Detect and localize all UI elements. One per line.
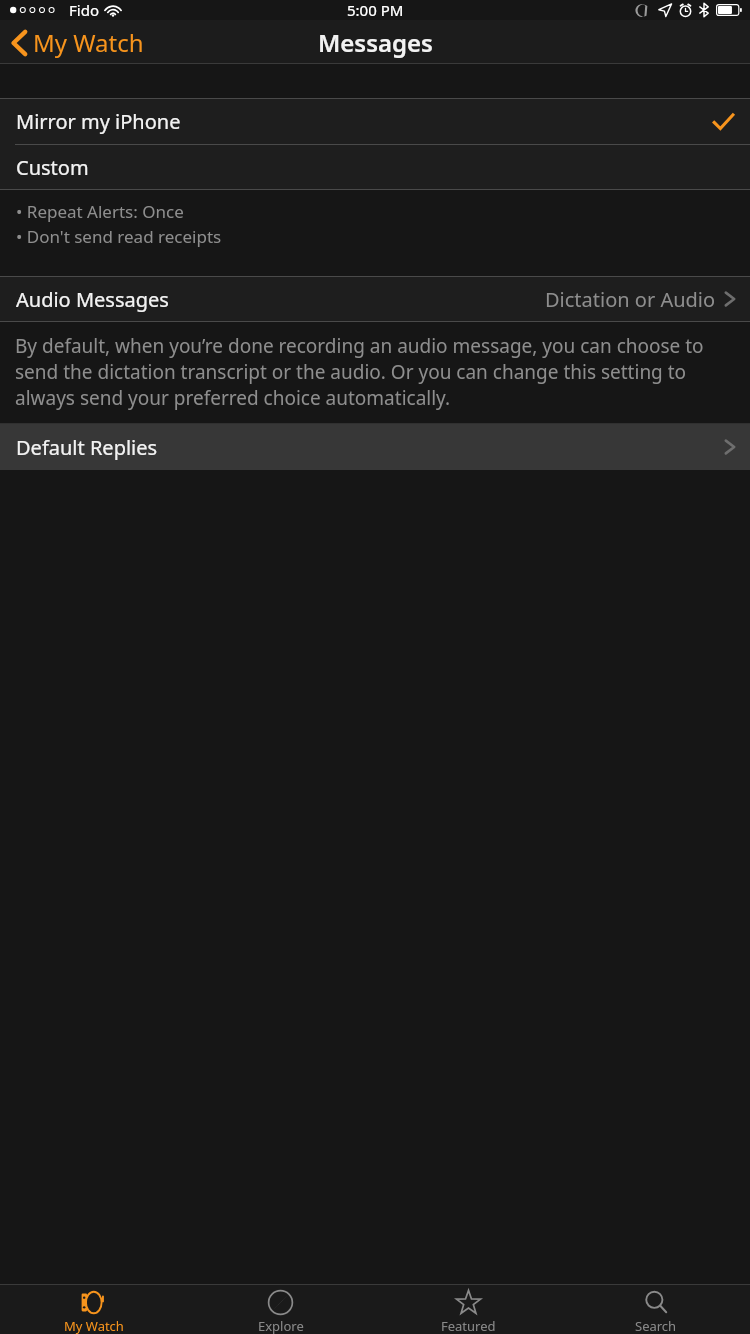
staticText: My Watch: [33, 26, 144, 59]
button[interactable]: Explore: [187, 1285, 374, 1334]
staticText: Messages: [318, 26, 433, 59]
staticText: Search: [635, 1317, 677, 1334]
staticText: Mirror my iPhone: [16, 108, 712, 135]
button[interactable]: Custom: [0, 145, 750, 189]
button[interactable]: Mirror my iPhone: [0, 99, 750, 144]
staticText: • Repeat Alerts: Once: [16, 200, 184, 223]
button[interactable]: Audio Messages: [0, 277, 750, 321]
staticText: Default Replies: [16, 434, 724, 461]
staticText: Dictation or Audio: [545, 286, 716, 313]
button[interactable]: Default Replies: [0, 424, 750, 470]
staticText: • Don't send read receipts: [16, 225, 222, 248]
staticText: Featured: [441, 1317, 496, 1334]
staticText: My Watch: [64, 1317, 124, 1334]
staticText: By default, when you’re done recording a…: [15, 333, 735, 411]
staticText: Custom: [16, 154, 89, 181]
staticText: Explore: [258, 1317, 304, 1334]
button[interactable]: Featured: [374, 1285, 562, 1334]
staticText: 5:00 PM: [347, 0, 404, 20]
button[interactable]: My Watch: [8, 22, 150, 63]
button[interactable]: My Watch: [0, 1285, 187, 1334]
staticText: Audio Messages: [16, 286, 545, 313]
button[interactable]: Search: [562, 1285, 750, 1334]
staticText: Fido: [69, 0, 99, 20]
